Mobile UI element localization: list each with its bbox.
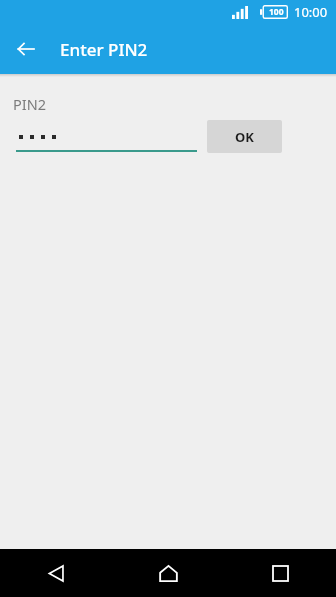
- button[interactable]: Recents: [224, 549, 336, 597]
- button[interactable]: Home: [112, 549, 224, 597]
- button[interactable]: Back: [0, 549, 112, 597]
- button[interactable]: [16, 122, 197, 152]
- staticText: Enter PIN2: [60, 38, 148, 61]
- staticText: 100: [269, 6, 284, 18]
- staticText: PIN2: [13, 94, 47, 114]
- staticText: OK: [235, 128, 254, 146]
- button[interactable]: OK: [207, 120, 282, 153]
- staticText: 10:00: [294, 3, 328, 21]
- button[interactable]: Back: [6, 29, 46, 69]
